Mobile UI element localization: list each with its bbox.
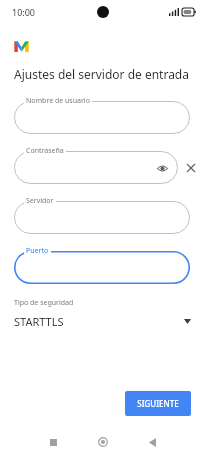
staticText: STARTTLS xyxy=(14,314,184,329)
staticText: Puerto xyxy=(26,246,49,256)
staticText: Nombre de usuario xyxy=(26,96,90,106)
button[interactable]: Mostrar contraseña xyxy=(154,160,170,176)
button[interactable]: Recientes xyxy=(42,431,64,453)
button[interactable]: SIGUIENTE xyxy=(125,391,191,416)
button[interactable]: Borrar xyxy=(182,159,199,176)
staticText: Servidor xyxy=(26,196,54,206)
staticText: Ajustes del servidor de entrada xyxy=(14,66,191,82)
staticText: 10:00 xyxy=(12,6,36,18)
staticText: Contraseña xyxy=(26,146,64,156)
staticText: Tipo de seguridad xyxy=(14,298,74,308)
button[interactable] xyxy=(14,201,190,234)
button[interactable]: Tipo de seguridad xyxy=(0,296,205,333)
button[interactable]: Mostrar contraseña xyxy=(14,151,178,184)
button[interactable]: Inicio xyxy=(92,431,114,453)
button[interactable] xyxy=(14,251,190,284)
staticText: SIGUIENTE xyxy=(137,398,179,409)
button[interactable]: Atrás xyxy=(141,431,163,453)
button[interactable] xyxy=(14,101,190,134)
